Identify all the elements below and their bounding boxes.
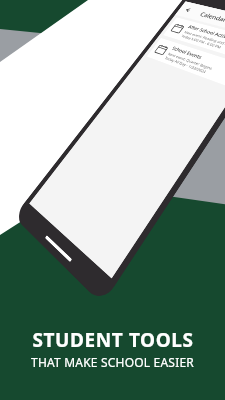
staticText: School Events (171, 45, 204, 60)
button[interactable]: School Events (146, 38, 225, 88)
button[interactable]: After School Activities (163, 17, 225, 62)
staticText: Today 5:00 PM - 6:00 PM (180, 34, 223, 50)
staticText: THAT MAKE SCHOOL EASIER (31, 354, 194, 370)
staticText: Calendars (198, 10, 225, 24)
staticText: STUDENT TOOLS (32, 327, 194, 353)
staticText: Next event: Reading and English Tuto (183, 30, 225, 52)
staticText: After School Activities (187, 24, 225, 43)
button[interactable]: Back (182, 6, 194, 14)
staticText: Today All Day - 1/22/2024 (164, 55, 208, 74)
staticText: Next event: Quarter Begins (167, 51, 214, 71)
